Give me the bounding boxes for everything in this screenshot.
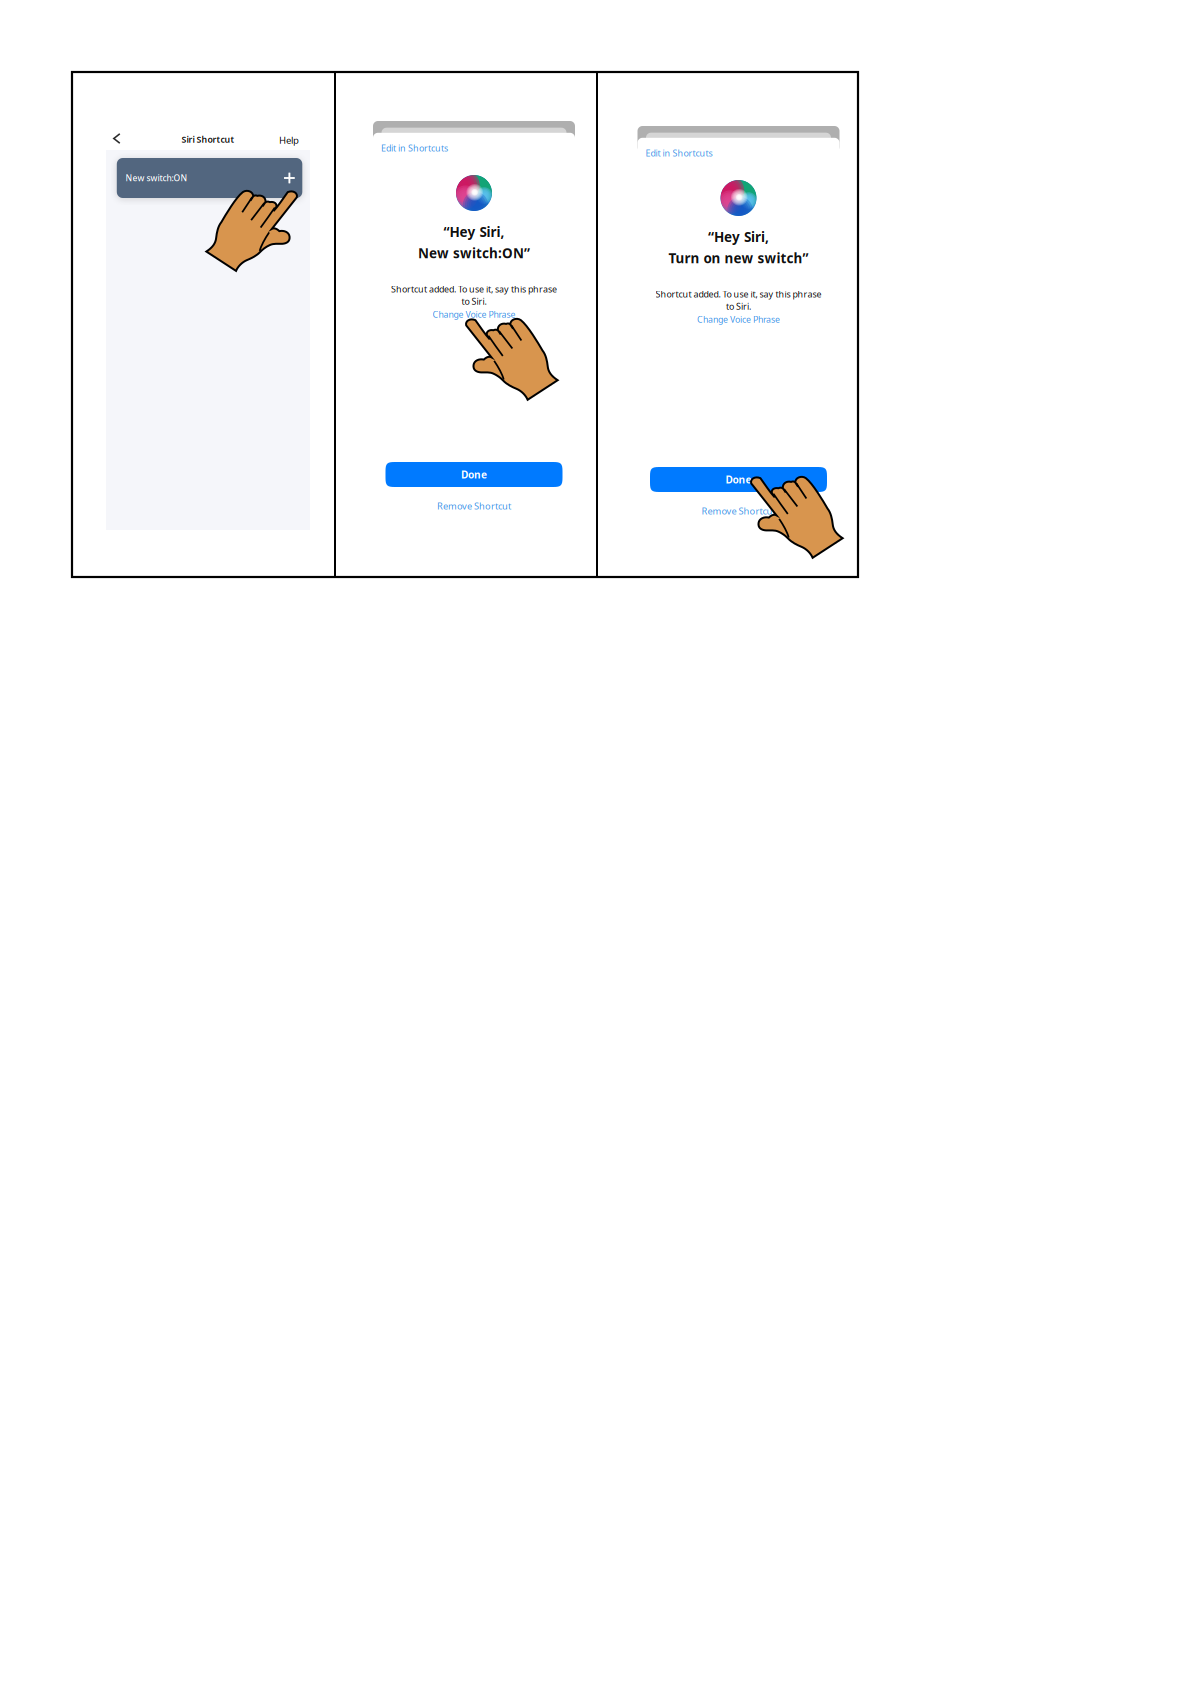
staticText: Turn on new switch” (668, 249, 808, 267)
staticText: to Siri. (461, 295, 486, 307)
staticText: Done (461, 468, 487, 481)
button[interactable]: Change Voice Phrase (695, 312, 782, 326)
staticText: Change Voice Phrase (697, 313, 780, 325)
button[interactable]: Back (109, 129, 125, 148)
staticText: Edit in Shortcuts (645, 147, 712, 159)
button[interactable]: Help (277, 132, 301, 148)
button[interactable]: Edit in Shortcuts (643, 145, 714, 161)
staticText: to Siri. (726, 300, 751, 312)
staticText: Help (279, 133, 299, 147)
staticText: Change Voice Phrase (432, 308, 515, 320)
button[interactable]: New switch:ON (117, 158, 302, 198)
button[interactable]: Edit in Shortcuts (379, 140, 450, 156)
button[interactable]: Remove Shortcut (637, 503, 839, 519)
staticText: New switch:ON (126, 172, 188, 184)
staticText: Shortcut added. To use it, say this phra… (655, 288, 821, 300)
button[interactable]: Remove Shortcut (373, 498, 575, 514)
staticText: “Hey Siri, (443, 222, 504, 241)
staticText: “Hey Siri, (708, 227, 769, 246)
staticText: Done (725, 473, 751, 486)
staticText: New switch:ON” (418, 244, 530, 262)
staticText: Siri Shortcut (181, 133, 234, 145)
button[interactable]: Done (385, 462, 562, 487)
staticText: Remove Shortcut (701, 504, 775, 517)
staticText: Remove Shortcut (437, 499, 511, 512)
button[interactable]: Done (650, 467, 827, 492)
button[interactable]: Change Voice Phrase (430, 307, 517, 321)
staticText: Shortcut added. To use it, say this phra… (391, 283, 557, 295)
staticText: Edit in Shortcuts (381, 142, 448, 154)
